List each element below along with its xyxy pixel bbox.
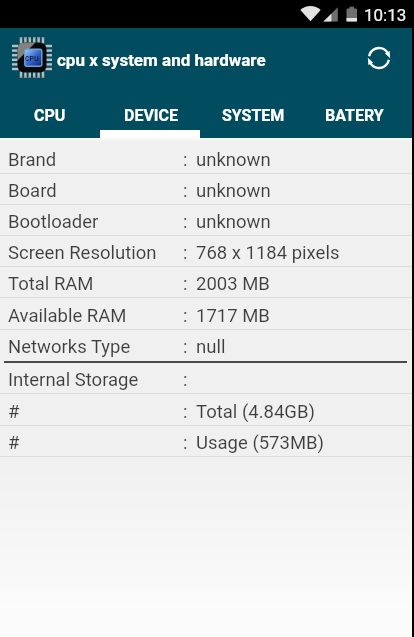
staticText: CPU <box>34 106 66 125</box>
staticText: 768 x 1184 pixels <box>196 242 340 264</box>
button[interactable]: DEVICE <box>100 97 202 138</box>
button[interactable]: Total RAM <box>0 267 412 298</box>
staticText: CPU <box>25 55 39 63</box>
button[interactable]: Internal Storage <box>0 363 412 394</box>
staticText: Networks Type <box>8 336 131 358</box>
staticText: Total (4.84GB) <box>196 401 315 423</box>
staticText: : <box>183 180 188 202</box>
staticText: Usage (573MB) <box>196 432 325 454</box>
staticText: SYSTEM <box>222 106 285 125</box>
staticText: cpu x system and hardware <box>57 50 266 70</box>
staticText: Screen Resolution <box>8 242 157 264</box>
staticText: Bootloader <box>8 211 99 233</box>
staticText: BATERY <box>325 106 384 125</box>
staticText: null <box>196 336 226 358</box>
staticText: # <box>8 401 20 423</box>
button[interactable]: BATERY <box>303 97 405 138</box>
button[interactable]: Bootloader <box>0 205 412 236</box>
staticText: DEVICE <box>124 106 179 125</box>
staticText: Internal Storage <box>8 369 139 391</box>
staticText: : <box>183 401 188 423</box>
staticText: Brand <box>8 149 57 171</box>
staticText: : <box>183 305 188 327</box>
staticText: # <box>8 432 20 454</box>
staticText: : <box>183 273 188 295</box>
staticText: Available RAM <box>8 305 127 327</box>
button[interactable]: # <box>0 395 412 426</box>
staticText: Total RAM <box>8 273 94 295</box>
staticText: : <box>183 432 188 454</box>
staticText: 10:13 <box>364 5 407 25</box>
staticText: : <box>183 242 188 264</box>
button[interactable]: SYSTEM <box>202 97 304 138</box>
button[interactable]: Networks Type <box>0 330 412 361</box>
button[interactable]: CPU <box>0 97 101 138</box>
button[interactable]: Board <box>0 174 412 205</box>
staticText: Board <box>8 180 57 202</box>
staticText: unknown <box>196 211 271 233</box>
staticText: : <box>183 211 188 233</box>
staticText: unknown <box>196 180 271 202</box>
button[interactable] <box>363 42 395 74</box>
staticText: : <box>183 336 188 358</box>
button[interactable]: Brand <box>0 143 412 174</box>
staticText: : <box>183 369 188 391</box>
staticText: unknown <box>196 149 271 171</box>
button[interactable]: Screen Resolution <box>0 236 412 267</box>
staticText: : <box>183 149 188 171</box>
button[interactable]: Available RAM <box>0 299 412 330</box>
staticText: 2003 MB <box>196 273 270 295</box>
staticText: 1717 MB <box>196 305 270 327</box>
button[interactable]: # <box>0 426 412 457</box>
